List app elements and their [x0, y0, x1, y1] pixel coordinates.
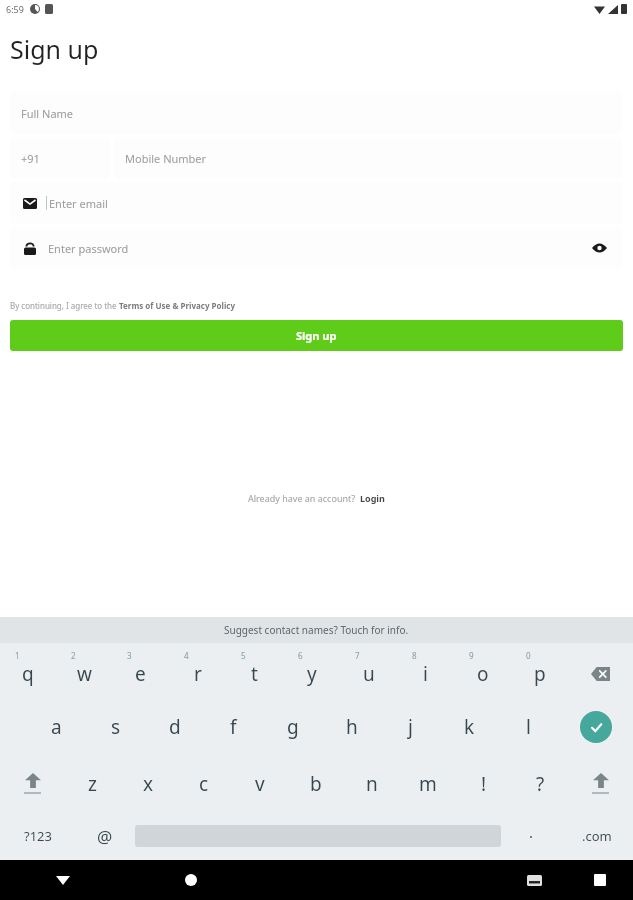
button[interactable]: . — [501, 812, 561, 860]
button[interactable]: s — [86, 698, 145, 755]
staticText: j — [408, 714, 413, 740]
button[interactable]: .com — [561, 812, 633, 860]
button[interactable]: Login — [360, 492, 385, 504]
button[interactable]: ? — [512, 755, 568, 812]
staticText: Enter password — [48, 241, 129, 256]
staticText: Terms of Use & Privacy Policy — [119, 300, 235, 311]
staticText: k — [464, 714, 475, 740]
button[interactable]: Recent apps — [567, 860, 633, 900]
staticText: b — [310, 771, 322, 797]
button[interactable]: 8 — [397, 643, 454, 698]
button[interactable]: 2 — [56, 643, 112, 698]
staticText: Suggest contact names? Touch for info. — [224, 623, 409, 637]
staticText: s — [111, 714, 121, 740]
button[interactable]: By continuing, I agree to the — [10, 300, 633, 311]
button[interactable]: 9 — [454, 643, 511, 698]
staticText: 0 — [526, 650, 531, 661]
button[interactable]: Shift — [0, 755, 65, 812]
button[interactable]: Home — [126, 860, 256, 900]
button[interactable]: @ — [75, 812, 135, 860]
staticText: 8 — [412, 650, 417, 661]
staticText: ? — [536, 771, 545, 797]
button[interactable]: Show password — [585, 234, 613, 262]
staticText: l — [526, 714, 531, 740]
staticText: r — [194, 661, 202, 687]
button[interactable]: n — [344, 755, 400, 812]
staticText: @ — [97, 825, 113, 848]
staticText: 4 — [184, 650, 189, 661]
button[interactable]: Keyboard — [501, 860, 567, 900]
button[interactable]: m — [400, 755, 456, 812]
staticText: Enter email — [49, 196, 108, 211]
button[interactable]: a — [27, 698, 86, 755]
button[interactable]: Enter email — [10, 182, 623, 224]
button[interactable]: Shift — [568, 755, 633, 812]
button[interactable]: b — [288, 755, 344, 812]
button[interactable]: v — [232, 755, 288, 812]
staticText: Full Name — [21, 106, 74, 121]
button[interactable]: d — [145, 698, 204, 755]
staticText: Login — [360, 492, 385, 504]
button[interactable]: l — [499, 698, 558, 755]
staticText: q — [22, 661, 34, 687]
staticText: . — [529, 822, 534, 842]
button[interactable]: j — [381, 698, 440, 755]
staticText: i — [423, 661, 428, 687]
staticText: p — [534, 661, 546, 687]
staticText: ?123 — [24, 827, 52, 845]
button[interactable]: Sign up — [10, 320, 623, 351]
button[interactable]: f — [204, 698, 263, 755]
staticText: .com — [582, 827, 612, 845]
button[interactable]: Back — [0, 860, 126, 900]
button[interactable]: ! — [456, 755, 512, 812]
button[interactable]: Suggest contact names? Touch for info. — [0, 617, 633, 643]
staticText: d — [169, 714, 181, 740]
button[interactable]: Enter password — [10, 227, 623, 269]
button[interactable]: 3 — [112, 643, 169, 698]
button[interactable]: k — [440, 698, 499, 755]
staticText: e — [135, 661, 146, 687]
button[interactable]: 6 — [283, 643, 340, 698]
staticText: g — [287, 714, 299, 740]
staticText: c — [199, 771, 209, 797]
button[interactable]: z — [65, 755, 120, 812]
staticText: 1 — [15, 650, 20, 661]
staticText: Sign up — [296, 328, 337, 343]
staticText: ! — [481, 771, 487, 797]
staticText: w — [77, 661, 92, 687]
staticText: o — [477, 661, 489, 687]
staticText: z — [88, 771, 97, 797]
button[interactable]: 4 — [169, 643, 226, 698]
button[interactable]: ?123 — [0, 812, 75, 860]
staticText: t — [251, 661, 258, 687]
button[interactable]: 5 — [226, 643, 283, 698]
staticText: m — [419, 771, 437, 797]
button[interactable]: h — [322, 698, 381, 755]
staticText: n — [366, 771, 378, 797]
button[interactable]: g — [263, 698, 322, 755]
staticText: 6:59 — [6, 3, 24, 15]
button[interactable]: Enter — [558, 698, 633, 755]
staticText: Already have an account? — [248, 492, 360, 504]
button[interactable]: c — [176, 755, 232, 812]
button[interactable]: x — [120, 755, 176, 812]
staticText: 9 — [469, 650, 474, 661]
staticText: Sign up — [10, 32, 99, 66]
button[interactable]: +91 — [10, 137, 110, 179]
staticText: Mobile Number — [125, 151, 207, 166]
button[interactable]: 0 — [511, 643, 568, 698]
button[interactable]: 7 — [340, 643, 397, 698]
staticText: By continuing, I agree to the — [10, 300, 119, 311]
staticText: u — [363, 661, 375, 687]
button[interactable]: Mobile Number — [114, 137, 623, 179]
staticText: +91 — [21, 151, 40, 166]
button[interactable]: Delete — [568, 643, 633, 698]
staticText: h — [346, 714, 358, 740]
staticText: 6 — [298, 650, 303, 661]
button[interactable]: Full Name — [10, 92, 623, 134]
staticText: 3 — [127, 650, 132, 661]
staticText: v — [255, 771, 265, 797]
staticText: 5 — [241, 650, 246, 661]
button[interactable]: 1 — [0, 643, 56, 698]
